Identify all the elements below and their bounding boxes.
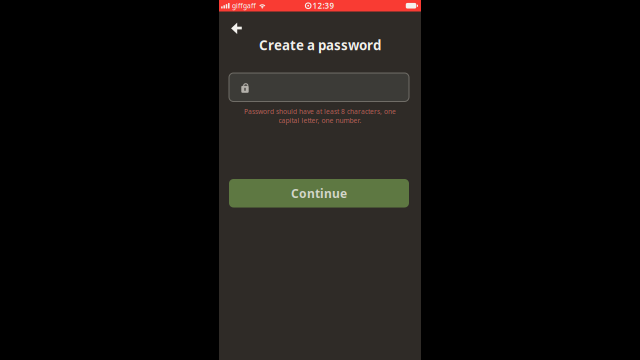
staticText: 12:39 [313, 0, 335, 11]
staticText: Password should have at least 8 characte… [244, 107, 396, 116]
button[interactable]: Password [229, 73, 409, 101]
button[interactable]: Continue [229, 179, 409, 207]
staticText: giffgaff [232, 1, 256, 10]
staticText: capital letter, one number. [278, 116, 361, 125]
button[interactable]: Back [222, 17, 250, 39]
staticText: Create a password [259, 36, 381, 54]
staticText: Continue [291, 185, 347, 201]
